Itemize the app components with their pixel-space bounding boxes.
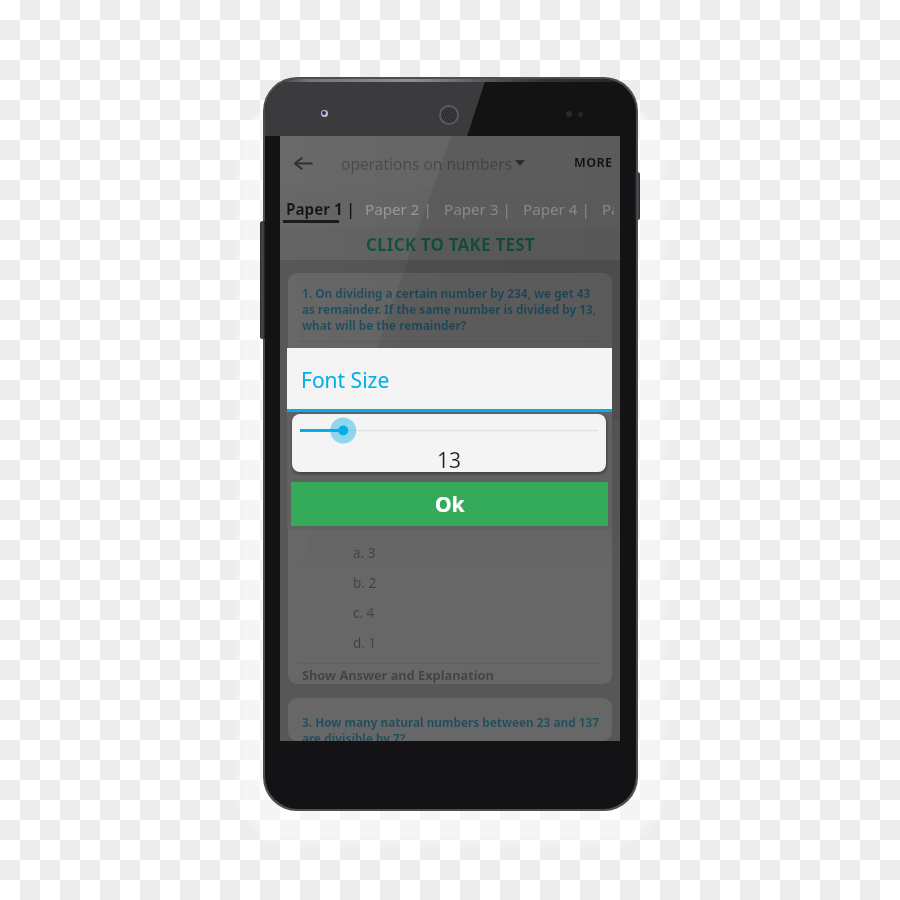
- staticText: CLICK TO TAKE TEST: [366, 233, 535, 256]
- staticText: b. 2: [353, 574, 377, 592]
- staticText: Ok: [435, 490, 465, 519]
- button[interactable]: Font size slider: [292, 414, 606, 472]
- staticText: Paper 5 |: [602, 199, 614, 220]
- staticText: operations on numbers: [341, 153, 513, 174]
- button[interactable]: 3. How many natural numbers between 23 a…: [288, 698, 612, 741]
- button[interactable]: Paper 1 |: [282, 190, 359, 229]
- staticText: Paper 4 |: [523, 199, 590, 220]
- button[interactable]: CLICK TO TAKE TEST: [280, 229, 620, 260]
- staticText: Paper 1 |: [286, 199, 355, 220]
- staticText: c. 4: [353, 604, 375, 622]
- button[interactable]: Paper 4 |: [517, 190, 596, 229]
- staticText: 1. On dividing a certain number by 234, …: [302, 285, 606, 333]
- staticText: a. 3: [353, 544, 376, 562]
- button[interactable]: Show Answer and Explanation: [288, 664, 612, 684]
- staticText: Paper 2 |: [365, 199, 432, 220]
- staticText: 3. How many natural numbers between 23 a…: [302, 714, 606, 741]
- button[interactable]: Ok: [291, 482, 608, 526]
- staticText: Font Size: [301, 366, 390, 395]
- button[interactable]: MORE: [561, 136, 620, 190]
- staticText: 13: [437, 446, 462, 472]
- staticText: Show Answer and Explanation: [302, 666, 494, 683]
- button[interactable]: Paper 2 |: [359, 190, 438, 229]
- button[interactable]: operations on numbers: [341, 136, 525, 190]
- button[interactable]: Navigate up: [280, 140, 326, 186]
- staticText: d. 1: [353, 634, 377, 652]
- button[interactable]: Paper 5 |: [596, 190, 620, 229]
- staticText: MORE: [574, 154, 613, 171]
- staticText: Paper 3 |: [444, 199, 511, 220]
- button[interactable]: Paper 3 |: [438, 190, 517, 229]
